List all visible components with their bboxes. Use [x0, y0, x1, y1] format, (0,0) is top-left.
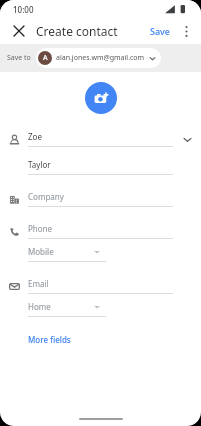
button[interactable]: Close: [8, 20, 30, 42]
staticText: 10:00: [13, 4, 34, 15]
button[interactable]: More fields: [23, 331, 76, 348]
button[interactable]: Save: [145, 22, 176, 40]
staticText: Save to: [7, 53, 31, 63]
button[interactable]: Expand name fields: [173, 128, 201, 150]
button[interactable]: A: [36, 48, 161, 68]
button[interactable]: Taylor: [0, 159, 201, 175]
staticText: Save: [150, 25, 171, 37]
button[interactable]: More options: [176, 21, 196, 41]
button[interactable]: Phone: [0, 223, 201, 239]
button[interactable]: Company: [0, 191, 201, 207]
button[interactable]: Email: [0, 278, 201, 294]
staticText: alan.jones.wm@gmail.com: [56, 53, 145, 63]
staticText: Home: [28, 301, 51, 312]
staticText: Create contact: [36, 23, 118, 39]
button[interactable]: Home: [28, 301, 106, 317]
staticText: Phone: [28, 223, 53, 234]
button[interactable]: Zoe: [0, 128, 201, 150]
staticText: Mobile: [28, 246, 54, 257]
staticText: Taylor: [28, 159, 51, 170]
staticText: Zoe: [28, 131, 42, 142]
staticText: A: [43, 53, 48, 63]
button[interactable]: Add photo: [85, 82, 117, 114]
staticText: More fields: [28, 334, 71, 345]
button[interactable]: Mobile: [28, 246, 106, 262]
staticText: Email: [28, 278, 49, 289]
staticText: Company: [28, 191, 64, 202]
